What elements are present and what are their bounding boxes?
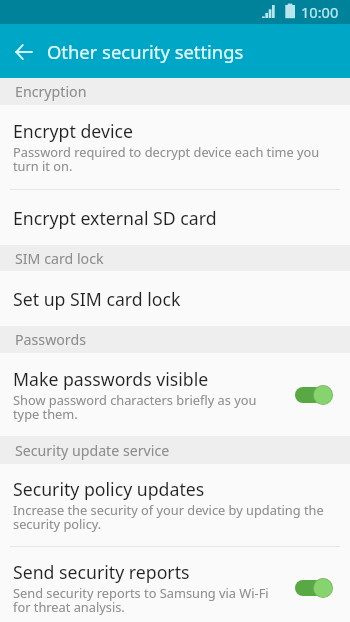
staticText: Encryption [15,82,87,101]
staticText: Security update service [15,441,170,460]
button[interactable]: Encrypt external SD card [0,190,350,245]
staticText: Make passwords visible [13,367,209,391]
button[interactable]: Back [0,28,47,75]
button[interactable]: Toggle [295,383,337,407]
staticText: Security policy updates [13,477,205,501]
staticText: 10:00 [301,2,339,22]
staticText: Password required to decrypt device each… [13,143,337,175]
staticText: Encrypt device [13,119,133,143]
staticText: Increase the security of your device by … [13,501,337,533]
staticText: Set up SIM card lock [13,287,181,311]
staticText: SIM card lock [15,249,104,268]
button[interactable]: Make passwords visible [0,353,350,436]
button[interactable]: Toggle [295,560,337,616]
staticText: Passwords [15,330,86,349]
button[interactable]: Security policy updates [0,464,350,546]
staticText: Other security settings [47,39,244,64]
staticText: Show password characters briefly as you … [13,391,285,423]
button[interactable]: Set up SIM card lock [0,271,350,326]
staticText: Encrypt external SD card [13,206,217,230]
staticText: Send security reports [13,560,190,584]
button[interactable]: Encrypt device [0,105,350,189]
button[interactable]: Send security reports [0,547,350,622]
staticText: Send security reports to Samsung via Wi-… [13,584,285,616]
